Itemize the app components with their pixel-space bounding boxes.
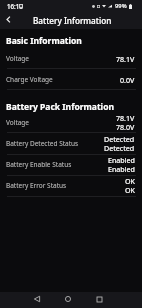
staticText: 78.1V [116, 54, 135, 64]
staticText: Charge Voltage [6, 75, 53, 84]
staticText: Enabled [108, 164, 135, 174]
staticText: Voltage [6, 54, 30, 63]
staticText: OK [125, 176, 135, 186]
staticText: 99% [115, 2, 127, 10]
staticText: Detected [104, 143, 135, 153]
button[interactable]: Battery Enable Status [0, 155, 142, 176]
staticText: Battery Detected Status [6, 139, 79, 148]
staticText: Basic Information [6, 35, 82, 47]
button[interactable]: Recents [87, 291, 111, 307]
staticText: 0.0V [120, 75, 135, 85]
staticText: OK [125, 185, 135, 195]
button[interactable]: Battery Detected Status [0, 133, 142, 155]
staticText: Enabled [108, 155, 135, 165]
button[interactable]: Back [0, 11, 18, 29]
staticText: Battery Enable Status [6, 160, 72, 169]
button[interactable]: Charge Voltage [0, 69, 142, 90]
staticText: 78.1V [116, 113, 135, 123]
staticText: Detected [104, 134, 135, 144]
button[interactable]: Battery Error Status [0, 176, 142, 197]
button[interactable]: Back [25, 291, 49, 307]
staticText: 16:18 [7, 2, 23, 10]
button[interactable]: Home [56, 291, 80, 307]
button[interactable]: Voltage [0, 48, 142, 69]
staticText: 78.0V [116, 122, 135, 132]
staticText: Battery Pack Information [6, 101, 114, 113]
staticText: Battery Information [33, 15, 112, 26]
staticText: Voltage [6, 118, 30, 127]
button[interactable]: Voltage [0, 112, 142, 133]
staticText: Battery Error Status [6, 181, 67, 190]
